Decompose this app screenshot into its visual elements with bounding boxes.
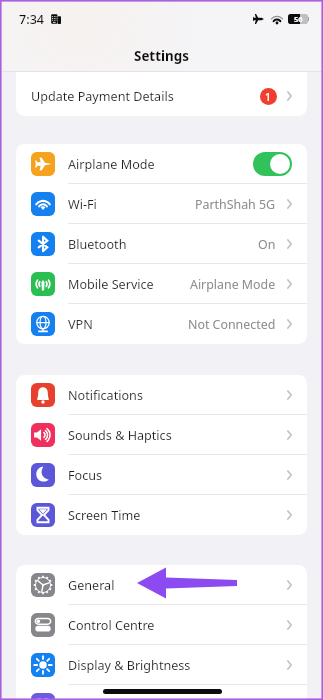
button[interactable]: Airplane Mode — [16, 144, 307, 184]
button[interactable]: Home Screen & App Library — [16, 685, 307, 700]
button[interactable]: Display & Brightness — [16, 645, 307, 685]
staticText: Wi-Fi — [68, 196, 97, 213]
staticText: Notifications — [68, 387, 143, 404]
button[interactable]: Notifications — [16, 375, 307, 415]
button[interactable]: General — [16, 565, 307, 605]
staticText: Focus — [68, 467, 103, 484]
button[interactable]: Airplane Mode toggle — [253, 152, 292, 176]
staticText: Display & Brightness — [68, 657, 191, 674]
staticText: 56 — [294, 14, 303, 24]
staticText: Sounds & Haptics — [68, 427, 172, 444]
button[interactable]: Update Payment Details — [16, 76, 307, 116]
staticText: Not Connected — [188, 316, 276, 333]
button[interactable]: Wi-Fi — [16, 184, 307, 224]
staticText: Update Payment Details — [31, 88, 174, 105]
staticText: Screen Time — [68, 507, 141, 524]
staticText: Bluetooth — [68, 236, 127, 253]
staticText: On — [258, 236, 276, 253]
staticText: Airplane Mode — [68, 156, 155, 173]
button[interactable]: Sounds & Haptics — [16, 415, 307, 455]
staticText: Control Centre — [68, 617, 155, 634]
staticText: Mobile Service — [68, 276, 154, 293]
staticText: Airplane Mode — [190, 276, 276, 293]
staticText: VPN — [68, 316, 93, 333]
button[interactable]: Screen Time — [16, 495, 307, 535]
staticText: Home Screen & App Library — [68, 697, 231, 700]
button[interactable]: Bluetooth — [16, 224, 307, 264]
button[interactable]: Mobile Service — [16, 264, 307, 304]
staticText: 7:34 — [19, 11, 45, 28]
staticText: ParthShah 5G — [195, 196, 276, 213]
staticText: Settings — [134, 47, 189, 65]
staticText: General — [68, 577, 115, 594]
button[interactable]: Control Centre — [16, 605, 307, 645]
staticText: 1 — [265, 90, 272, 104]
button[interactable]: Focus — [16, 455, 307, 495]
button[interactable]: VPN — [16, 304, 307, 344]
